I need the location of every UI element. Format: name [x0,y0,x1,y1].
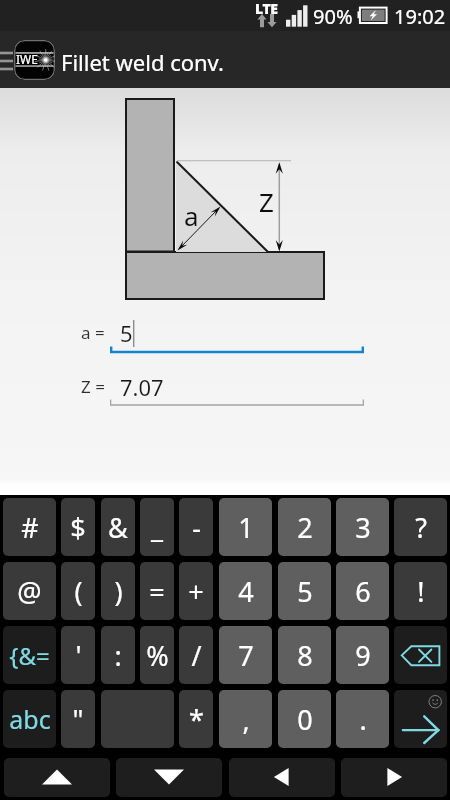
button[interactable]: _ [140,498,174,556]
button[interactable]: & [101,498,135,556]
staticText: 4 [238,573,254,610]
staticText: 3 [355,509,371,546]
staticText: ( [74,573,83,610]
staticText: 2 [297,509,313,546]
button[interactable]: Enter [394,690,447,748]
staticText: 5 [120,318,133,348]
staticText: " [72,701,84,738]
staticText: Z = [81,375,105,398]
staticText: # [21,509,39,546]
staticText: a [184,198,199,233]
button[interactable]: 2 [278,498,331,556]
staticText: . [359,701,367,738]
staticText: ) [114,573,123,610]
button[interactable]: 1 [219,498,272,556]
button[interactable]: / [179,626,213,684]
staticText: @ [17,573,42,610]
button[interactable]: ) [101,562,135,620]
staticText: + [188,573,204,610]
button[interactable]: Space [101,690,174,748]
button[interactable]: App icon [14,40,55,80]
button[interactable]: 8 [278,626,331,684]
button[interactable]: Backspace [394,626,447,684]
button[interactable]: 0 [278,690,331,748]
button[interactable] [110,346,364,355]
staticText: 8 [297,637,313,674]
button[interactable] [110,399,364,408]
staticText: Fillet weld conv. [61,47,224,77]
button[interactable]: % [140,626,174,684]
button[interactable]: DOWN [116,758,222,797]
button[interactable]: UP [4,758,110,797]
staticText: 9 [355,637,371,674]
staticText: 7.07 [120,372,164,402]
button[interactable]: ' [61,626,95,684]
staticText: a = [81,321,105,344]
staticText: $ [70,509,86,546]
button[interactable]: 7 [219,626,272,684]
staticText: ? [415,509,427,546]
button[interactable]: 4 [219,562,272,620]
button[interactable]: - [179,498,213,556]
staticText: 1 [238,509,254,546]
button[interactable]: @ [3,562,56,620]
button[interactable]: $ [61,498,95,556]
button[interactable]: ? [394,498,447,556]
staticText: _ [151,509,163,546]
button[interactable]: 9 [336,626,389,684]
button[interactable]: RIGHT [341,758,447,797]
button[interactable]: . [336,690,389,748]
staticText: {&= [9,639,50,672]
staticText: IWE [16,51,38,67]
button[interactable]: * [179,690,213,748]
button[interactable]: Menu [0,46,13,76]
staticText: 6 [355,573,371,610]
staticText: 90% [313,3,353,30]
staticText: / [191,637,202,674]
button[interactable]: 5 [278,562,331,620]
staticText: , [242,701,250,738]
button[interactable]: abc [3,690,56,748]
staticText: 19:02 [394,3,446,30]
button[interactable]: 3 [336,498,389,556]
staticText: - [192,509,201,546]
staticText: LTE [255,0,278,18]
staticText: ' [75,637,82,674]
button[interactable]: 6 [336,562,389,620]
button[interactable]: ! [394,562,447,620]
staticText: * [189,701,204,738]
button[interactable]: {&= [3,626,56,684]
button[interactable]: + [179,562,213,620]
button[interactable]: = [140,562,174,620]
button[interactable]: : [101,626,135,684]
button[interactable]: # [3,498,56,556]
button[interactable]: , [219,690,272,748]
staticText: Z [259,184,276,219]
button[interactable]: LEFT [229,758,335,797]
staticText: : [114,637,122,674]
staticText: abc [9,702,51,736]
button[interactable]: ( [61,562,95,620]
staticText: & [108,509,128,546]
staticText: = [149,573,165,610]
staticText: % [146,637,169,674]
staticText: ! [417,573,425,610]
button[interactable]: " [61,690,95,748]
staticText: 5 [297,573,313,610]
staticText: 0 [297,701,313,738]
staticText: 7 [238,637,254,674]
